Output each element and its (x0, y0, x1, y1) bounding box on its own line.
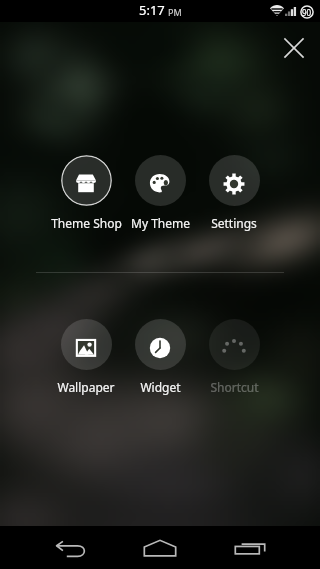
button[interactable]: Widget (123, 319, 197, 397)
button[interactable]: My Theme (123, 155, 197, 233)
button[interactable]: Wallpaper (49, 319, 123, 397)
button[interactable]: Settings (197, 155, 271, 233)
staticText: 90 (302, 7, 312, 18)
button[interactable]: Home (135, 526, 185, 569)
button[interactable]: Recents (225, 526, 275, 569)
button[interactable]: Theme Shop (49, 155, 123, 233)
staticText: Widget (140, 379, 181, 395)
staticText: Shortcut (210, 379, 259, 395)
staticText: 5:17 (139, 1, 165, 19)
button[interactable]: Close (276, 30, 312, 66)
button[interactable]: Shortcut (197, 319, 271, 397)
staticText: My Theme (131, 215, 190, 231)
staticText: PM (168, 6, 182, 18)
button[interactable]: Back (46, 526, 96, 569)
staticText: Settings (211, 215, 257, 231)
staticText: Wallpaper (57, 379, 115, 395)
staticText: Theme Shop (51, 215, 122, 231)
